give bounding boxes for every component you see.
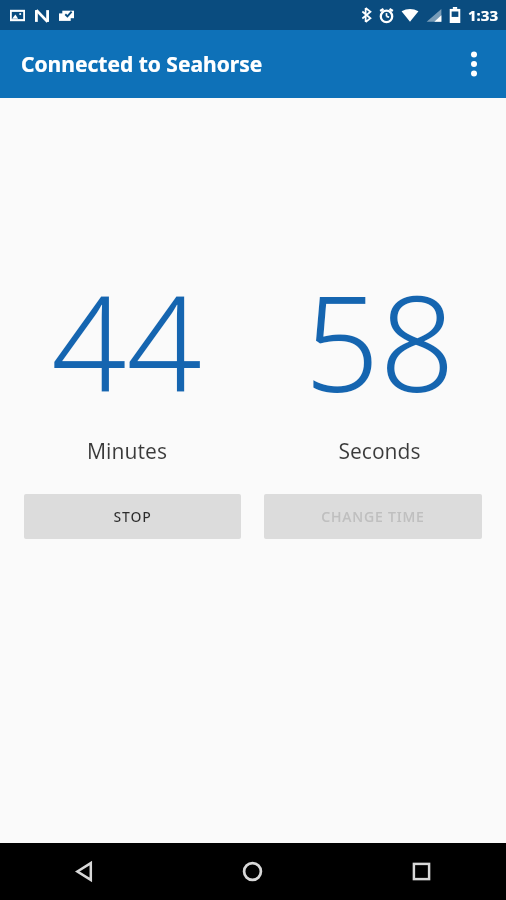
button[interactable]: More options	[452, 42, 496, 86]
staticText: Seconds	[338, 437, 421, 466]
button[interactable]: CHANGE TIME	[264, 494, 482, 539]
staticText: STOP	[113, 507, 152, 526]
staticText: 44	[51, 251, 202, 431]
button[interactable]: Recent apps	[337, 843, 506, 900]
staticText: Minutes	[87, 437, 167, 466]
staticText: Connected to Seahorse	[21, 50, 263, 79]
staticText: 58	[304, 251, 455, 431]
button[interactable]: Home	[168, 843, 337, 900]
staticText: CHANGE TIME	[321, 507, 425, 526]
button[interactable]: STOP	[24, 494, 241, 539]
staticText: 1:33	[468, 5, 498, 25]
button[interactable]: Back	[0, 843, 168, 900]
